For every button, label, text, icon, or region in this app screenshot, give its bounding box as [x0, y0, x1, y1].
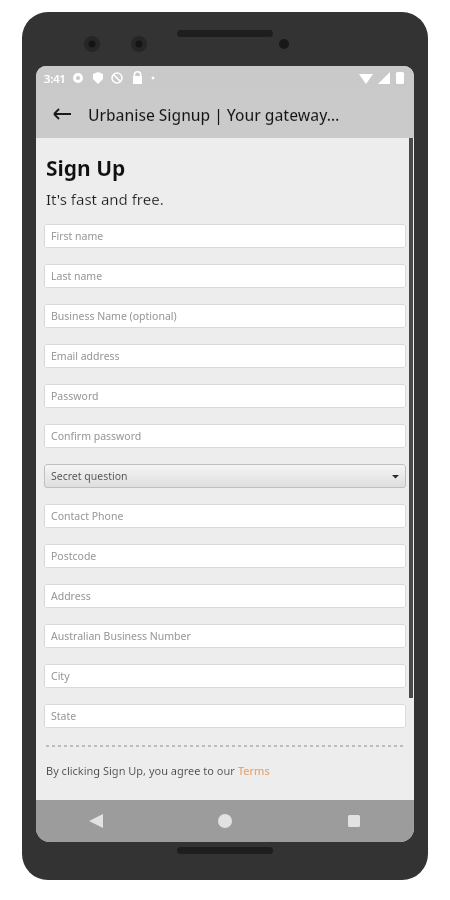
button[interactable]: Confirm password [44, 424, 406, 448]
staticText: Address [51, 589, 91, 603]
staticText: Secret question [51, 469, 128, 483]
button[interactable]: Email address [44, 344, 406, 368]
staticText: Business Name (optional) [51, 309, 177, 323]
staticText: Email address [51, 349, 120, 363]
staticText: By clicking Sign Up, you agree to our [46, 763, 238, 778]
staticText: Postcode [51, 549, 97, 563]
button[interactable]: Last name [44, 264, 406, 288]
button[interactable]: First name [44, 224, 406, 248]
button[interactable]: Back [42, 94, 82, 134]
button[interactable]: Business Name (optional) [44, 304, 406, 328]
button[interactable]: City [44, 664, 406, 688]
button[interactable]: Password [44, 384, 406, 408]
staticText: It's fast and free. [46, 189, 164, 209]
button[interactable]: Australian Business Number [44, 624, 406, 648]
staticText: Last name [51, 269, 103, 283]
button[interactable]: Contact Phone [44, 504, 406, 528]
staticText: Sign Up [46, 154, 126, 183]
staticText: 3:41 [44, 71, 66, 86]
staticText: Contact Phone [51, 509, 124, 523]
staticText: Urbanise Signup | Your gateway… [88, 104, 340, 125]
button[interactable]: Back [76, 801, 116, 841]
staticText: State [51, 709, 77, 723]
button[interactable]: Address [44, 584, 406, 608]
button[interactable]: Postcode [44, 544, 406, 568]
button[interactable]: Recent apps [334, 801, 374, 841]
button[interactable]: Home [205, 801, 245, 841]
staticText: First name [51, 229, 104, 243]
button[interactable]: Secret question [44, 464, 406, 488]
button[interactable]: State [44, 704, 406, 728]
staticText: Australian Business Number [51, 629, 191, 643]
staticText: Password [51, 389, 99, 403]
button[interactable]: Terms [238, 763, 270, 778]
staticText: City [51, 669, 70, 683]
staticText: Confirm password [51, 429, 142, 443]
